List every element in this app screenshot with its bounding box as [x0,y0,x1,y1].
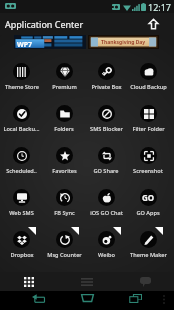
button[interactable]: Private Box [85,62,127,91]
staticText: Filter Folder [132,125,165,133]
staticText: GO Apps [136,209,160,217]
staticText: Cloud Backup [130,83,167,91]
staticText: Scheduled.. [6,167,37,175]
button[interactable]: Recents [127,290,143,306]
button[interactable]: Theme Maker [127,230,169,259]
button[interactable]: Folders [43,104,85,133]
button[interactable]: Messages [116,272,174,291]
staticText: Msg Counter [47,251,82,259]
button[interactable]: Msg Counter [43,230,85,259]
button[interactable]: SMS Blocker [85,104,127,133]
button[interactable]: Scheduled.. [0,146,43,175]
staticText: Thanksgiving Day [101,39,146,46]
button[interactable]: Local Backu... [0,104,43,133]
button[interactable]: Thanksgiving Day [88,35,159,49]
button[interactable]: Apps [0,272,58,291]
button[interactable]: Back [30,290,46,306]
button[interactable]: Screenshot [127,146,169,175]
staticText: Web SMS [9,209,34,217]
staticText: iOS GO Chat [90,209,123,217]
button[interactable]: Favorites [43,146,85,175]
staticText: GO Share [93,167,119,175]
staticText: Private Box [91,83,122,91]
staticText: FB Sync [54,209,75,217]
staticText: WP7 [17,40,33,50]
button[interactable]: Dropbox [0,230,43,259]
button[interactable]: GO Share [85,146,127,175]
button[interactable]: Premium [43,62,85,91]
button[interactable]: Upload [146,17,160,31]
staticText: Theme Store [5,83,39,91]
button[interactable]: Menu [58,272,116,291]
button[interactable]: GO [127,188,169,217]
button[interactable]: FB Sync [43,188,85,217]
staticText: 12:17 [148,1,172,13]
staticText: Dropbox [10,251,34,259]
staticText: SMS Blocker [90,125,123,133]
staticText: Screenshot [133,167,163,175]
staticText: Folders [54,125,74,133]
staticText: Weibo [98,251,115,259]
button[interactable]: WP7 [14,35,86,49]
button[interactable]: iOS GO Chat [85,188,127,217]
staticText: Theme Maker [130,251,167,259]
button[interactable]: Cloud Backup [127,62,169,91]
button[interactable]: Filter Folder [127,104,169,133]
staticText: Application Center [5,18,84,30]
staticText: Local Backu... [3,125,40,133]
button[interactable]: Theme Store [0,62,43,91]
button[interactable]: More options [158,293,170,305]
staticText: Favorites [52,167,77,175]
staticText: GO [142,192,155,203]
staticText: Premium [52,83,77,91]
button[interactable]: Weibo [85,230,127,259]
button[interactable]: Web SMS [0,188,43,217]
button[interactable]: Home [79,290,95,306]
